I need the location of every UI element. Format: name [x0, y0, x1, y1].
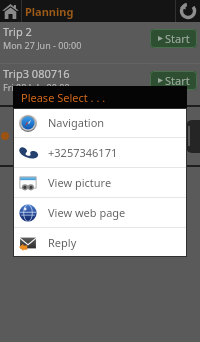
button[interactable]: Start [150, 71, 197, 90]
button[interactable]: Trip3 080716 [0, 64, 200, 105]
button[interactable]: More [0, 107, 200, 165]
button[interactable]: Reply [13, 228, 187, 257]
button[interactable]: Navigation [13, 108, 187, 137]
staticText: Planning [25, 4, 74, 19]
staticText: View picture [48, 175, 112, 190]
staticText: Reply [48, 235, 77, 250]
staticText: Start [165, 31, 190, 46]
staticText: View web page [48, 205, 126, 220]
staticText: Navigation [48, 115, 105, 130]
staticText: Trip3 080716 [3, 66, 70, 81]
button[interactable]: Trip 2 [0, 22, 200, 63]
staticText: Please Select . . . [21, 90, 106, 105]
button[interactable]: Home [0, 0, 21, 22]
button[interactable]: Refresh [176, 0, 200, 22]
button[interactable]: View picture [13, 168, 187, 197]
staticText: Fri 08 Jul - 00:00 [3, 81, 70, 93]
staticText: Trip 2 [3, 24, 32, 39]
button[interactable]: +3257346171 [13, 138, 187, 167]
staticText: +3257346171 [48, 145, 118, 160]
button[interactable]: Start [150, 29, 197, 48]
staticText: Mon 27 Jun - 00:00 [3, 39, 82, 51]
staticText: Start [165, 73, 190, 88]
button[interactable]: View web page [13, 198, 187, 227]
button[interactable]: More [186, 120, 200, 153]
